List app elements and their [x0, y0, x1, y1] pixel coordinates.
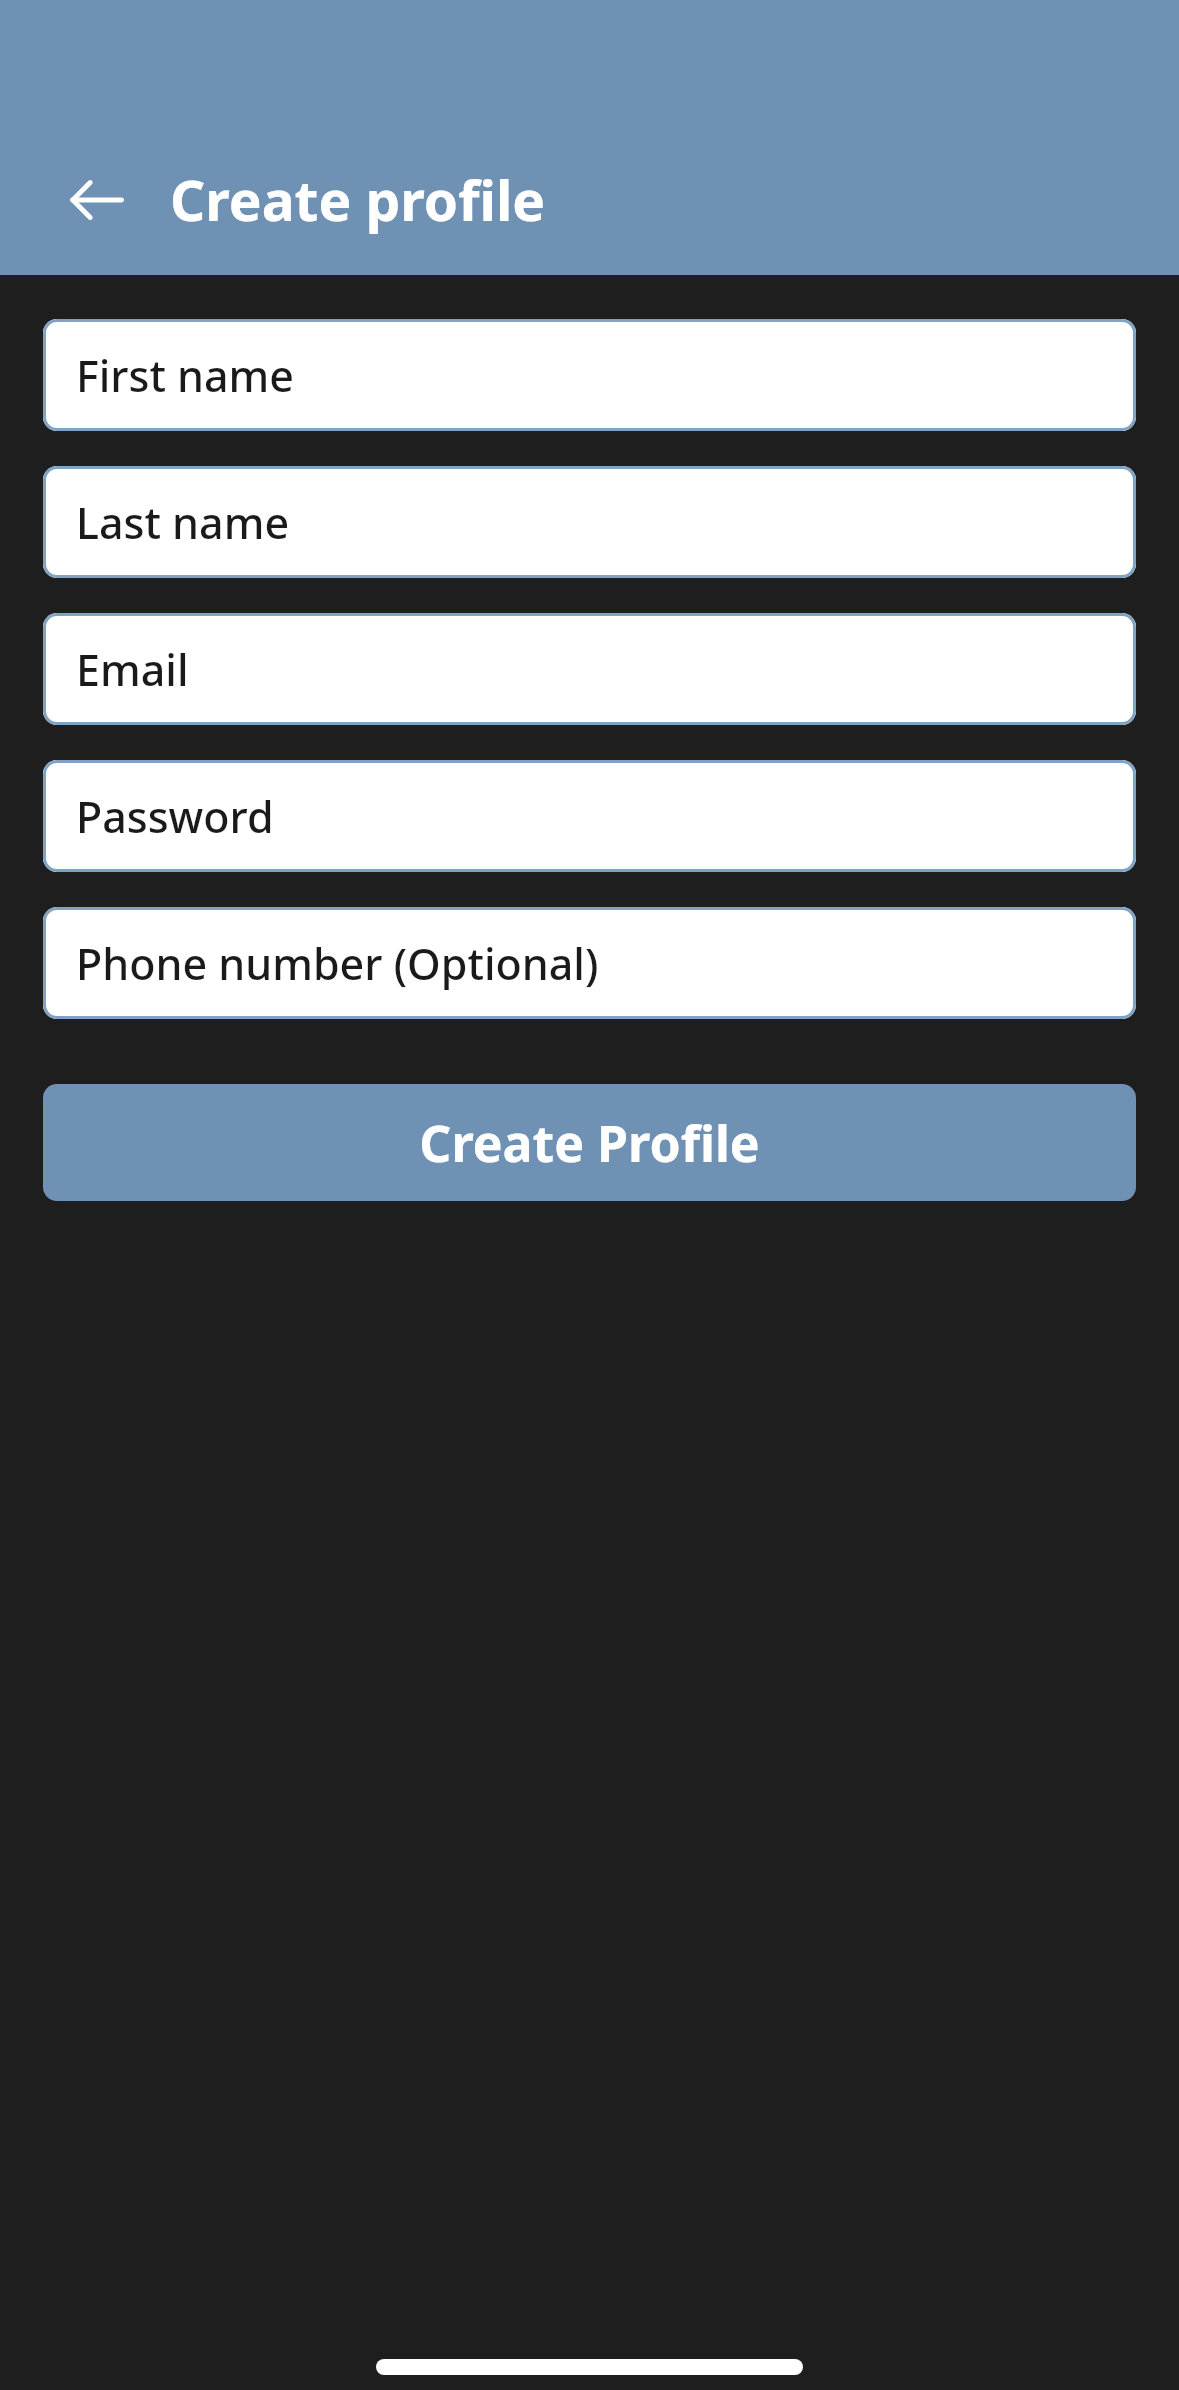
staticText: Phone number (Optional): [76, 934, 599, 993]
staticText: Password: [76, 787, 274, 846]
staticText: First name: [76, 346, 295, 405]
button[interactable]: Back: [60, 164, 132, 236]
staticText: Email: [76, 640, 189, 699]
button[interactable]: Password: [43, 760, 1136, 872]
button[interactable]: Last name: [43, 466, 1136, 578]
button[interactable]: Phone number (Optional): [43, 907, 1136, 1019]
staticText: Create Profile: [419, 1109, 760, 1177]
button[interactable]: Email: [43, 613, 1136, 725]
button[interactable]: Create Profile: [43, 1084, 1136, 1201]
button[interactable]: First name: [43, 319, 1136, 431]
staticText: Create profile: [170, 162, 546, 237]
staticText: Last name: [76, 493, 290, 552]
